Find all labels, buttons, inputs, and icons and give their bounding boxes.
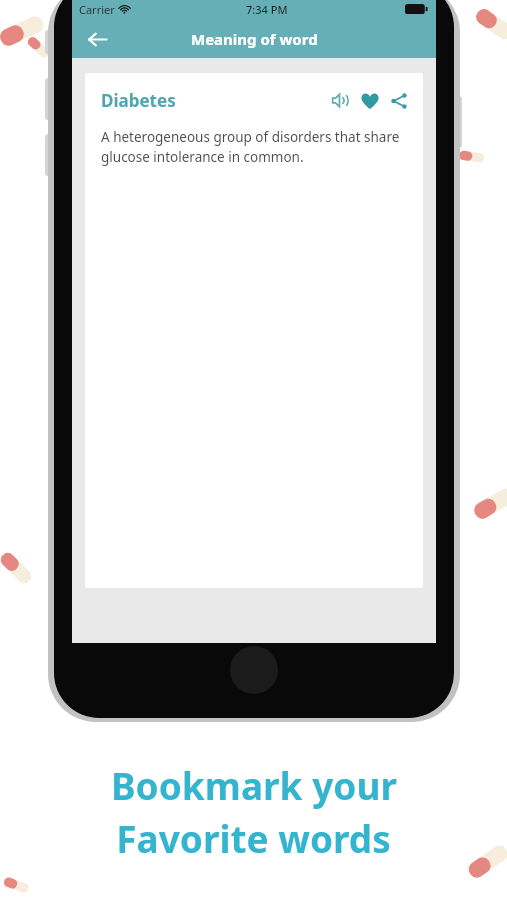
staticText: Favorite words xyxy=(116,813,391,863)
staticText: Bookmark your xyxy=(111,760,397,810)
staticText: Meaning of word xyxy=(191,29,318,49)
button[interactable]: Pronounce xyxy=(329,89,352,112)
staticText: A heterogeneous group of disorders that … xyxy=(101,128,401,166)
button[interactable]: Back xyxy=(81,23,113,55)
button[interactable]: Home xyxy=(230,646,278,694)
staticText: Carrier xyxy=(79,2,115,17)
staticText: Diabetes xyxy=(101,89,176,112)
staticText: 7:34 PM xyxy=(246,2,288,17)
button[interactable]: Share xyxy=(387,89,410,112)
button[interactable]: Favorite xyxy=(358,89,381,112)
